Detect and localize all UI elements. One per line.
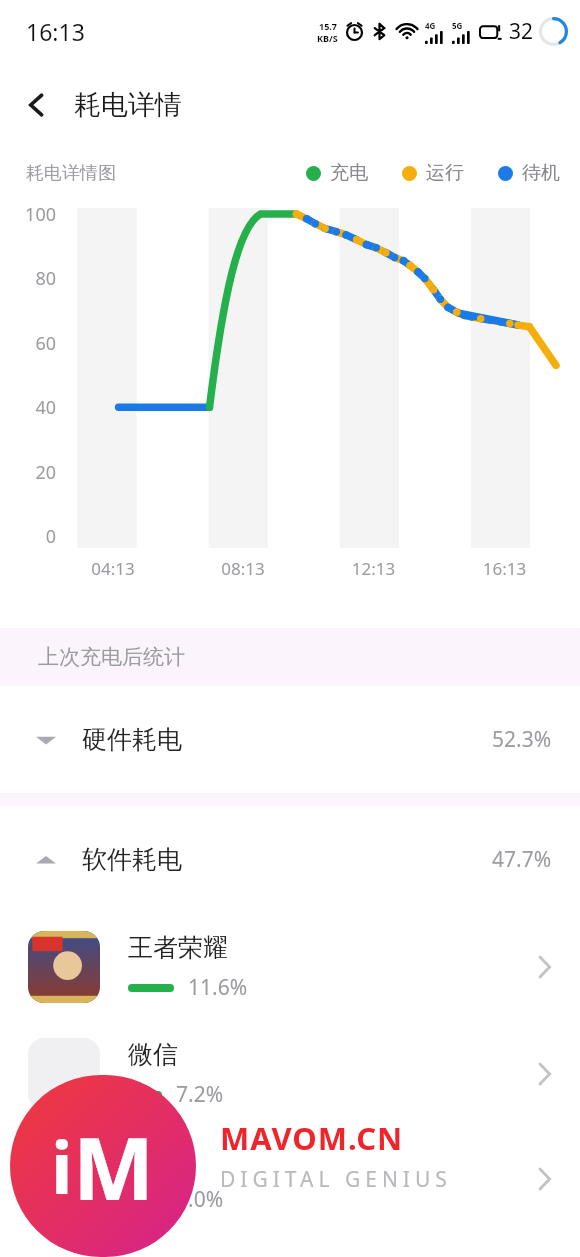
staticText: 08:13	[178, 557, 308, 580]
staticText: 5G	[452, 20, 463, 31]
staticText: 充电	[330, 161, 368, 185]
staticText: 11.6%	[188, 973, 248, 1002]
button[interactable]: Back	[0, 62, 74, 148]
staticText: 0	[0, 524, 56, 549]
staticText: 32	[509, 17, 534, 46]
staticText: i	[51, 1117, 73, 1215]
staticText: 微信	[128, 1039, 178, 1070]
button[interactable]: 软件耗电	[0, 806, 580, 913]
staticText: 52.3%	[492, 725, 552, 754]
staticText: 待机	[522, 161, 560, 185]
staticText: 100	[0, 202, 56, 227]
staticText: 04:13	[48, 557, 178, 580]
staticText: 12:13	[308, 557, 439, 580]
staticText: 软件耗电	[82, 844, 182, 875]
button[interactable]: 充电	[306, 161, 368, 185]
staticText: MAVOM.CN	[220, 1117, 404, 1159]
button[interactable]: 硬件耗电	[0, 686, 580, 793]
button[interactable]: 待机	[498, 161, 560, 185]
staticText: 耗电详情图	[26, 162, 116, 185]
staticText: 47.7%	[492, 845, 552, 874]
staticText: 80	[0, 266, 56, 291]
staticText: 60	[0, 331, 56, 356]
staticText: 20	[0, 460, 56, 485]
staticText: 耗电详情	[74, 88, 182, 122]
staticText: 16:13	[26, 16, 85, 47]
staticText: DIGITAL GENIUS	[220, 1165, 452, 1194]
staticText: 4G	[425, 20, 436, 31]
button[interactable]: 运行	[402, 161, 464, 185]
staticText: 40	[0, 395, 56, 420]
staticText: KB/S	[317, 32, 338, 44]
staticText: 王者荣耀	[128, 932, 228, 963]
staticText: 运行	[426, 161, 464, 185]
staticText: 上次充电后统计	[38, 644, 185, 670]
button[interactable]: 抖音	[0, 1126, 580, 1231]
staticText: 16:13	[439, 557, 570, 580]
staticText: 硬件耗电	[82, 724, 182, 755]
staticText: 7.2%	[176, 1080, 224, 1109]
staticText: 抖音	[128, 1144, 178, 1175]
staticText: 15.7	[319, 20, 337, 32]
button[interactable]: 王者荣耀	[0, 913, 580, 1021]
staticText: M	[73, 1108, 155, 1225]
button[interactable]: 微信	[0, 1021, 580, 1126]
staticText: 5.0%	[176, 1185, 224, 1214]
